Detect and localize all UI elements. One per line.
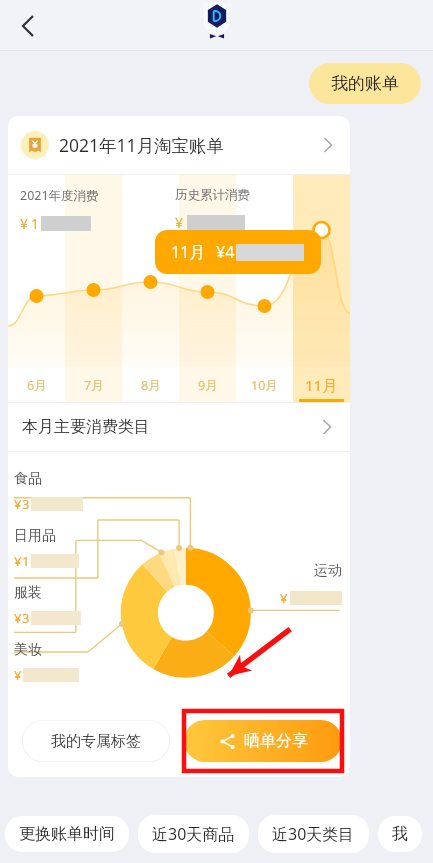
button[interactable]: 我的专属标签	[22, 720, 170, 762]
staticText: 服装	[14, 584, 42, 602]
button[interactable]: 2021年11月淘宝账单	[8, 116, 350, 174]
staticText: ¥	[14, 552, 22, 570]
staticText: 近30天类目	[272, 823, 355, 845]
staticText: 本月主要消费类目	[22, 417, 150, 437]
staticText: 1	[22, 552, 30, 570]
button[interactable]: 近30天商品	[138, 815, 249, 853]
staticText: 近30天商品	[152, 823, 235, 845]
button[interactable]: 更换账单时间	[5, 816, 129, 852]
staticText: ¥	[14, 609, 22, 627]
button[interactable]: Assistant avatar	[195, 1, 239, 45]
staticText: 更换账单时间	[19, 824, 115, 844]
staticText: ¥4	[216, 241, 235, 263]
staticText: 9月	[198, 377, 218, 394]
staticText: ¥	[175, 213, 184, 232]
staticText: ¥	[20, 214, 29, 233]
staticText: 晒单分享	[244, 731, 308, 751]
staticText: 6月	[27, 377, 47, 394]
staticText: 日用品	[14, 527, 56, 545]
button[interactable]: 8月	[122, 368, 179, 402]
button[interactable]: 11月	[293, 368, 350, 402]
staticText: 1	[31, 214, 40, 233]
button[interactable]: 我的账单	[309, 63, 421, 104]
staticText: 食品	[14, 470, 42, 488]
button[interactable]: 晒单分享	[184, 720, 342, 762]
staticText: 美妆	[14, 641, 42, 659]
staticText: 3	[22, 609, 30, 627]
staticText: 我的专属标签	[51, 732, 141, 751]
staticText: ¥	[14, 666, 22, 684]
staticText: 11月	[305, 375, 338, 395]
staticText: ¥	[14, 495, 22, 513]
staticText: 运动	[314, 562, 342, 580]
staticText: 3	[22, 495, 30, 513]
button[interactable]: 10月	[236, 368, 293, 402]
staticText: 我的账单	[331, 73, 399, 94]
staticText: 我	[392, 824, 408, 844]
button[interactable]: 本月主要消费类目	[8, 403, 350, 451]
button[interactable]: 近30天类目	[258, 815, 369, 853]
staticText: 历史累计消费	[175, 187, 250, 203]
staticText: 2021年11月淘宝账单	[59, 133, 225, 157]
button[interactable]: 7月	[65, 368, 122, 402]
button[interactable]: 6月	[8, 368, 65, 402]
staticText: 11月	[171, 241, 206, 263]
staticText: ¥	[280, 589, 288, 607]
staticText: 7月	[84, 377, 104, 394]
button[interactable]: 我	[378, 816, 422, 852]
staticText: 10月	[251, 377, 278, 394]
button[interactable]: 9月	[179, 368, 236, 402]
button[interactable]: Back	[4, 2, 52, 50]
staticText: 8月	[141, 377, 161, 394]
staticText: 2021年度消费	[20, 187, 99, 204]
